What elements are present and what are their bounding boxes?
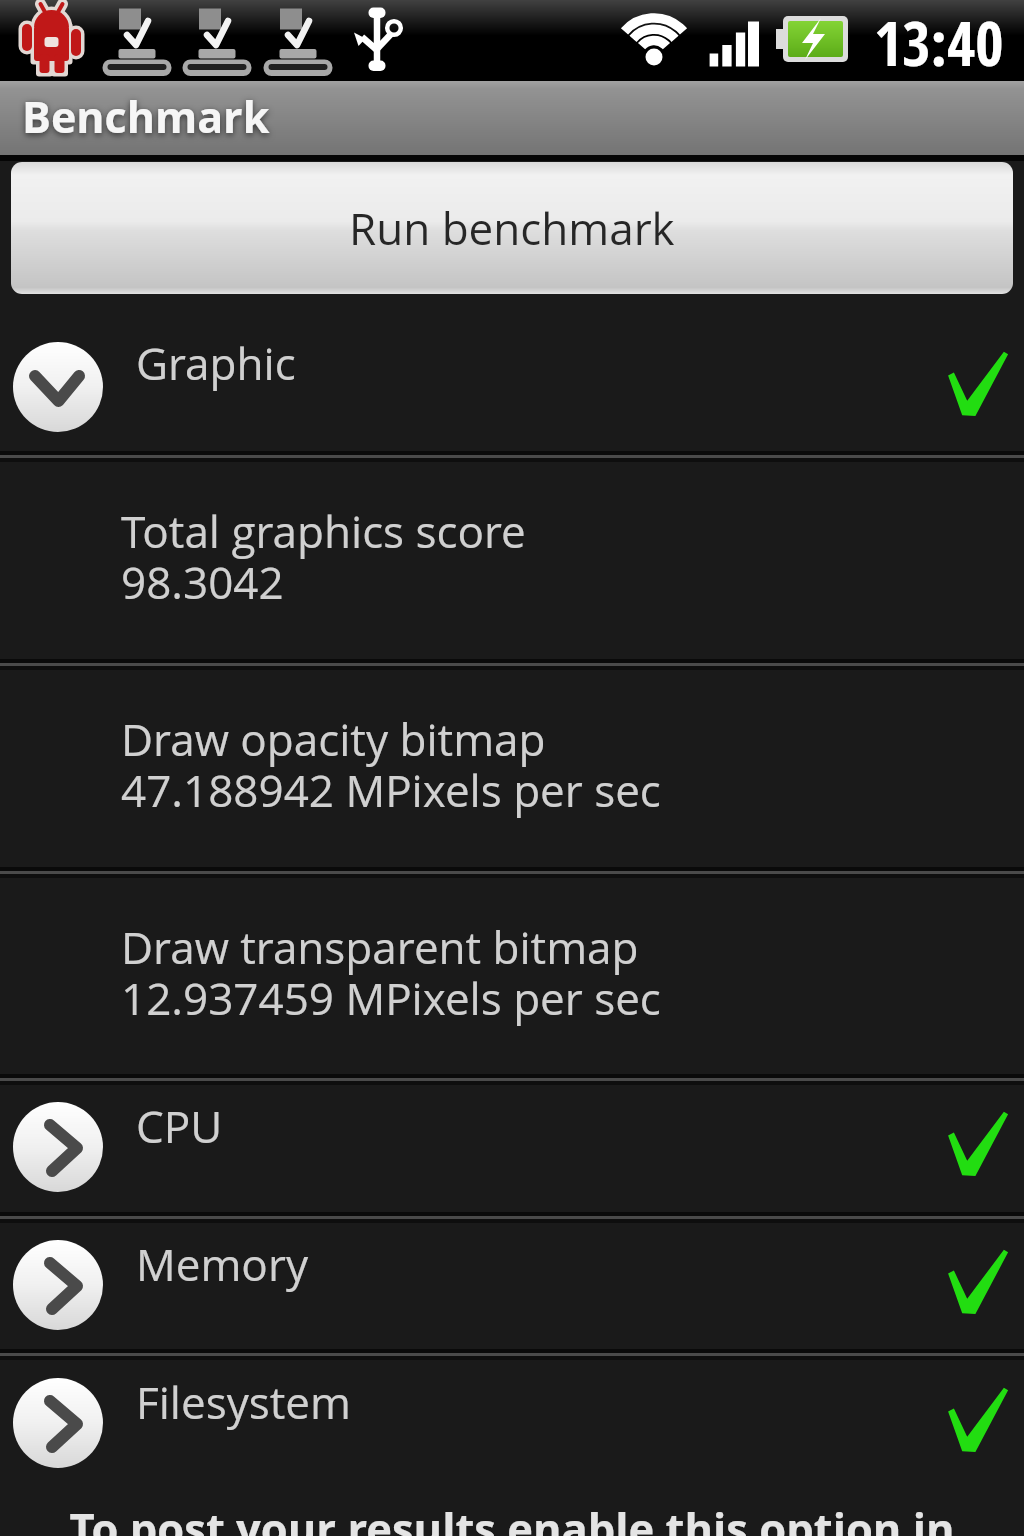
button[interactable]: Expand Memory (13, 1240, 103, 1330)
staticText: 47.188942 MPixels per sec (121, 760, 661, 820)
staticText: 98.3042 (121, 552, 284, 612)
staticText: Draw transparent bitmap (121, 917, 639, 977)
button[interactable]: Expand Filesystem (13, 1378, 103, 1468)
button[interactable]: Collapse Graphic (13, 342, 103, 432)
staticText: Memory (136, 1234, 309, 1294)
button[interactable]: Filesystem (0, 1354, 1024, 1492)
staticText: Benchmark (22, 87, 270, 146)
staticText: Run benchmark (349, 198, 675, 258)
staticText: To post your results enable this option … (0, 1499, 1024, 1536)
staticText: 13:40 (874, 1, 1004, 82)
staticText: Graphic (136, 333, 296, 393)
staticText: CPU (136, 1096, 223, 1156)
button[interactable]: Memory (0, 1217, 1024, 1354)
button[interactable]: Graphic (0, 294, 1024, 456)
staticText: Total graphics score (121, 501, 526, 561)
button[interactable]: CPU (0, 1079, 1024, 1217)
staticText: Draw opacity bitmap (121, 709, 546, 769)
button[interactable]: Run benchmark (11, 162, 1013, 294)
button[interactable]: Expand CPU (13, 1102, 103, 1192)
staticText: Filesystem (136, 1372, 351, 1432)
staticText: 12.937459 MPixels per sec (121, 968, 661, 1028)
